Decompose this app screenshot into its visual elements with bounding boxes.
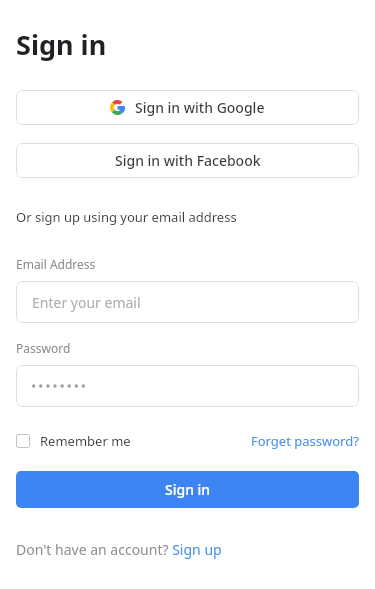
button[interactable]: Sign in with Facebook xyxy=(16,143,359,178)
button[interactable]: Enter your email xyxy=(16,281,359,323)
staticText: Sign in with Google xyxy=(135,98,265,117)
button[interactable]: Forget password? xyxy=(251,429,359,453)
button[interactable]: Sign in with Google xyxy=(16,90,359,125)
button[interactable]: Don't have an account? Sign up xyxy=(16,538,222,561)
button[interactable]: Password xyxy=(16,365,359,407)
staticText: Forget password? xyxy=(251,432,359,450)
staticText: Email Address xyxy=(16,256,96,272)
staticText: Don't have an account? Sign up xyxy=(16,540,222,559)
staticText: Sign in with Facebook xyxy=(115,151,261,170)
button[interactable]: Sign in xyxy=(16,471,359,508)
staticText: Remember me xyxy=(40,432,131,450)
staticText: Sign in xyxy=(165,480,211,499)
button[interactable]: Remember me xyxy=(16,429,131,453)
staticText: Sign in xyxy=(16,26,107,63)
staticText: Or sign up using your email address xyxy=(16,208,237,226)
staticText: Enter your email xyxy=(32,293,141,312)
staticText: Password xyxy=(16,340,71,356)
